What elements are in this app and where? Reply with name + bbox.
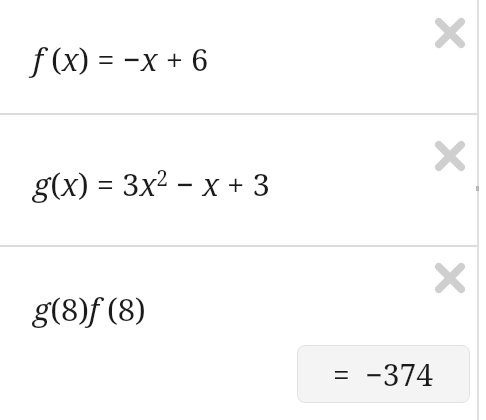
button[interactable]: g(8)f (8) bbox=[0, 247, 486, 420]
button[interactable]: = −374 bbox=[297, 345, 470, 403]
button[interactable]: Delete expression bbox=[427, 133, 473, 179]
staticText: g(x) = 3x2 − x + 3 bbox=[33, 163, 270, 205]
button[interactable]: g(x) = 3x2 − x + 3 bbox=[0, 115, 486, 246]
button[interactable]: Delete expression bbox=[427, 255, 473, 301]
staticText: = −374 bbox=[333, 354, 434, 395]
staticText: f (x) = −x + 6 bbox=[33, 38, 209, 80]
staticText: g(8)f (8) bbox=[33, 288, 146, 330]
button[interactable]: f (x) = −x + 6 bbox=[0, 0, 486, 114]
button[interactable]: Delete expression bbox=[427, 10, 473, 56]
